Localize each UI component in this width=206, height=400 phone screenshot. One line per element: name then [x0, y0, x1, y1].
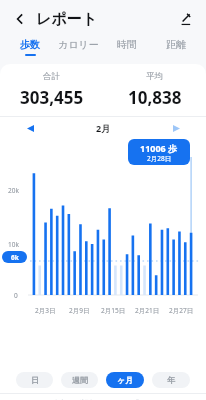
- staticText: 2月3日: [35, 306, 56, 315]
- button[interactable]: Back: [10, 9, 30, 29]
- staticText: 2月: [96, 122, 111, 134]
- button[interactable]: Edit: [174, 8, 196, 30]
- button[interactable]: 歩数: [6, 38, 54, 64]
- staticText: 平均: [146, 71, 163, 82]
- staticText: 11006 歩: [140, 142, 178, 154]
- staticText: 6k: [11, 253, 19, 262]
- staticText: 距離: [166, 38, 186, 51]
- button[interactable]: 合計: [0, 64, 103, 116]
- staticText: 日: [31, 375, 39, 385]
- button[interactable]: Next month: [146, 117, 206, 139]
- button[interactable]: 距離: [151, 38, 200, 64]
- button[interactable]: 日: [16, 372, 53, 388]
- staticText: 2月15日: [101, 306, 126, 315]
- staticText: 2月27日: [169, 306, 194, 315]
- staticText: 合計: [43, 71, 60, 82]
- button[interactable]: ヶ月: [106, 372, 144, 388]
- staticText: カロリー: [58, 38, 99, 51]
- staticText: 2月28日: [147, 154, 172, 163]
- staticText: 年: [167, 375, 175, 385]
- button[interactable]: カロリー: [54, 38, 102, 64]
- staticText: レポート: [36, 10, 98, 29]
- staticText: 歩数: [20, 38, 40, 51]
- button[interactable]: Previous month: [0, 117, 60, 139]
- button[interactable]: 時間: [102, 38, 151, 64]
- staticText: 20k: [8, 186, 19, 195]
- staticText: 10,838: [128, 86, 182, 109]
- staticText: 2月9日: [69, 306, 90, 315]
- staticText: 10k: [8, 240, 19, 249]
- button[interactable]: 平均: [103, 64, 206, 116]
- button[interactable]: 年: [152, 372, 190, 388]
- staticText: 週間: [72, 375, 88, 385]
- staticText: ヶ月: [117, 375, 134, 385]
- staticText: 時間: [117, 38, 137, 51]
- button[interactable]: 週間: [61, 372, 98, 388]
- staticText: 2月21日: [135, 306, 160, 315]
- staticText: 303,455: [20, 86, 84, 109]
- staticText: 0: [14, 291, 18, 300]
